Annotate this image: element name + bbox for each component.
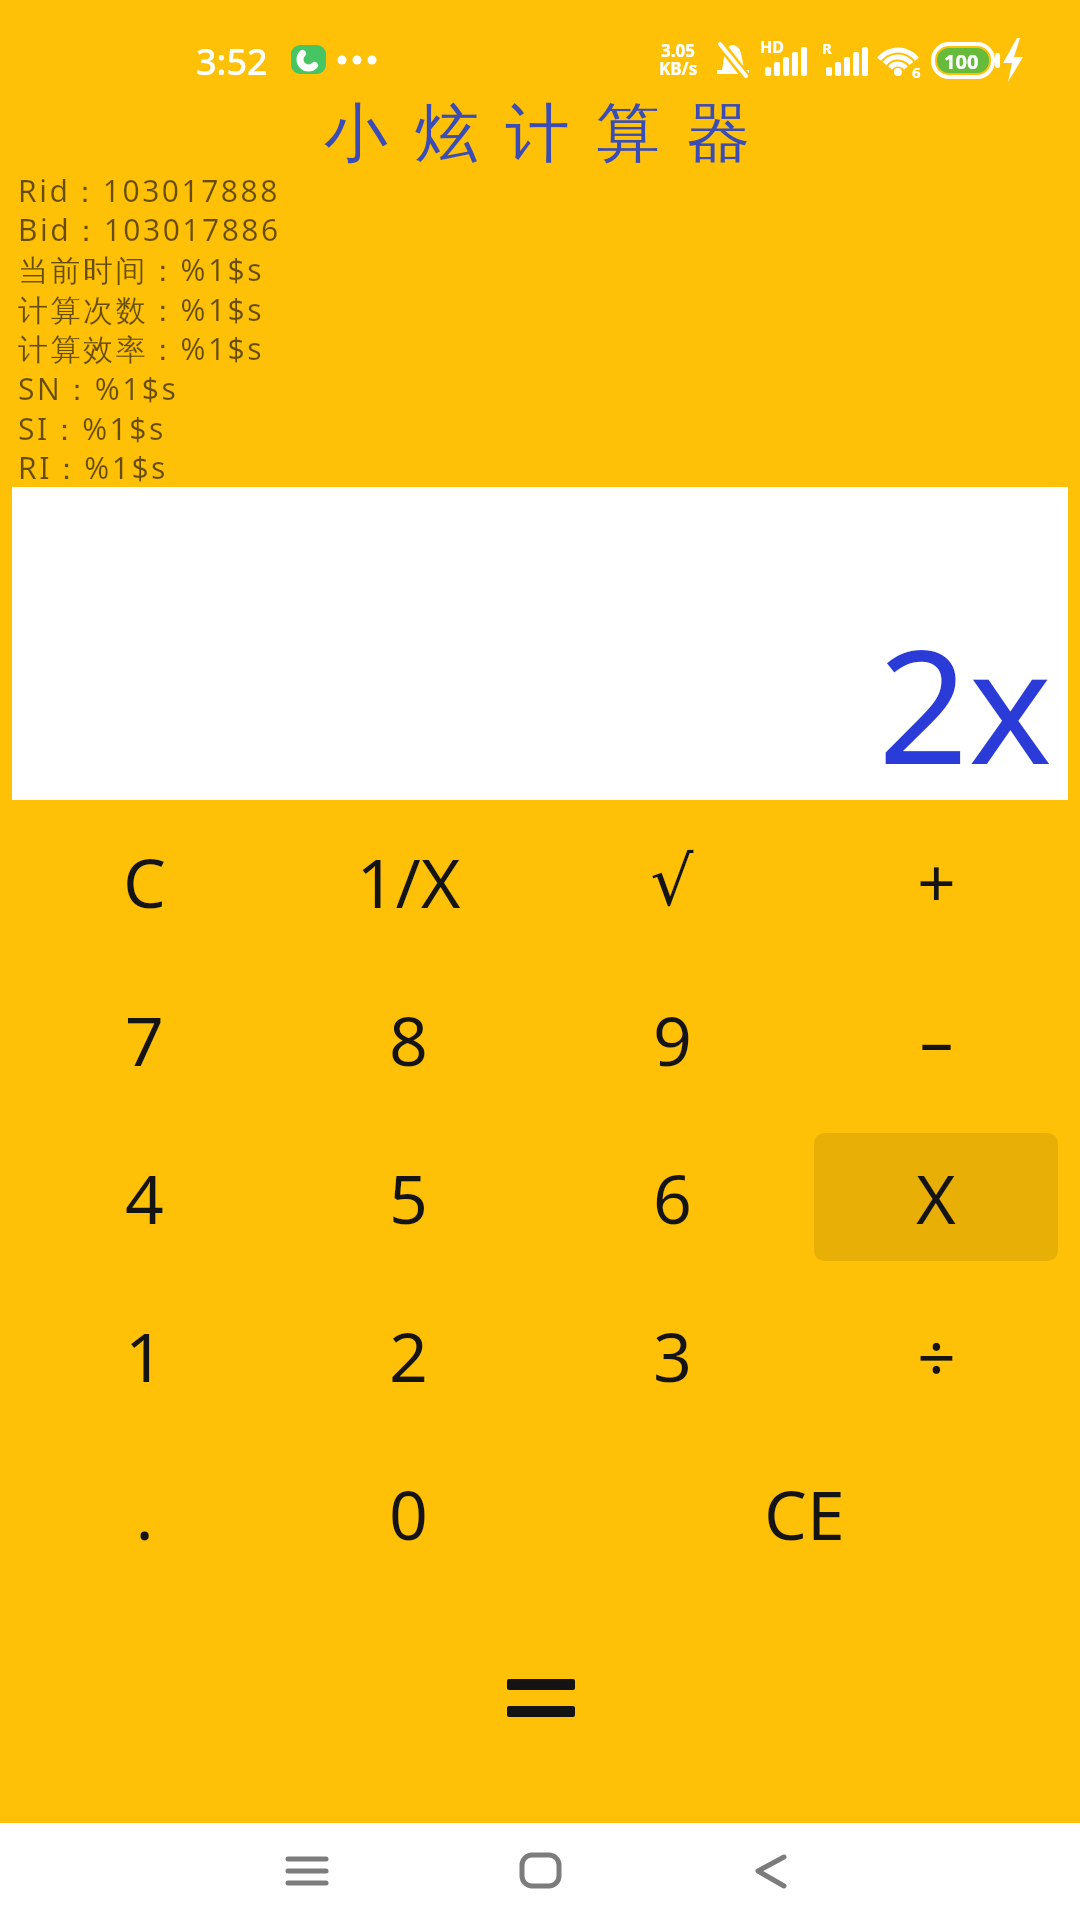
button[interactable]: + <box>804 802 1068 960</box>
staticText: . <box>135 1467 154 1560</box>
staticText: 2 <box>389 1309 428 1402</box>
staticText: 计算效率：%1$s <box>18 328 265 369</box>
staticText: 2x <box>878 595 1052 810</box>
staticText: 1/X <box>356 835 461 928</box>
button[interactable]: 1/X <box>276 802 540 960</box>
button[interactable]: 5 <box>276 1118 540 1276</box>
staticText: + <box>917 835 956 928</box>
staticText: Rid：103017888 <box>18 170 280 211</box>
button[interactable]: 1 <box>12 1276 276 1434</box>
staticText: C <box>123 835 166 928</box>
button[interactable]: 4 <box>12 1118 276 1276</box>
staticText: 8 <box>389 993 428 1086</box>
staticText: – <box>919 993 954 1086</box>
staticText: 3.05 <box>661 39 695 62</box>
staticText: 小 炫 计 算 器 <box>324 87 756 174</box>
button[interactable]: . <box>12 1434 276 1592</box>
staticText: 当前时间：%1$s <box>18 249 265 290</box>
staticText: 3:52 <box>196 37 268 86</box>
button[interactable]: 6 <box>540 1118 804 1276</box>
staticText: X <box>916 1151 956 1244</box>
staticText: R <box>822 38 832 58</box>
staticText: 5 <box>389 1151 428 1244</box>
button[interactable]: 3 <box>540 1276 804 1434</box>
button[interactable] <box>710 1823 830 1920</box>
staticText: SI：%1$s <box>18 408 166 449</box>
button[interactable]: C <box>12 802 276 960</box>
staticText: KB/s <box>659 57 698 80</box>
button[interactable]: 0 <box>276 1434 540 1592</box>
staticText: 4 <box>125 1151 164 1244</box>
staticText: 计算次数：%1$s <box>18 289 265 330</box>
button[interactable]: √ <box>540 802 804 960</box>
staticText: HD <box>760 36 784 58</box>
button[interactable] <box>250 1823 370 1920</box>
staticText: Bid：103017886 <box>18 209 281 250</box>
button[interactable]: 2 <box>276 1276 540 1434</box>
staticText: 100 <box>944 48 979 75</box>
button[interactable]: X <box>804 1118 1068 1276</box>
button[interactable]: CE <box>540 1434 1068 1592</box>
staticText: 6 <box>912 62 921 82</box>
staticText: 0 <box>389 1467 428 1560</box>
button[interactable] <box>470 1650 610 1740</box>
button[interactable]: ÷ <box>804 1276 1068 1434</box>
staticText: ÷ <box>917 1309 956 1402</box>
button[interactable]: – <box>804 960 1068 1118</box>
staticText: 7 <box>125 993 164 1086</box>
button[interactable]: 8 <box>276 960 540 1118</box>
button[interactable]: 7 <box>12 960 276 1118</box>
staticText: RI：%1$s <box>18 447 168 488</box>
staticText: √ <box>650 842 694 921</box>
staticText: SN：%1$s <box>18 368 179 409</box>
staticText: 9 <box>653 993 692 1086</box>
button[interactable] <box>480 1823 600 1920</box>
staticText: 1 <box>125 1309 164 1402</box>
staticText: 3 <box>653 1309 692 1402</box>
staticText: 6 <box>653 1151 692 1244</box>
button[interactable]: 9 <box>540 960 804 1118</box>
staticText: CE <box>764 1467 845 1560</box>
